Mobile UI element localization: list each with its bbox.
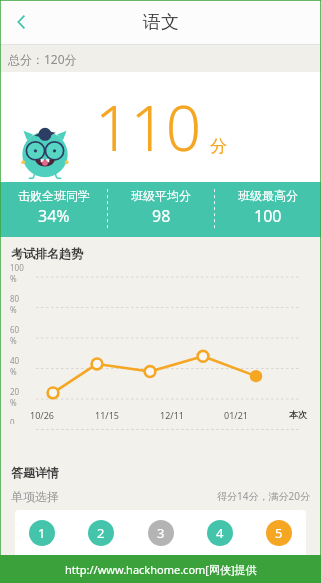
staticText: 11/15 <box>95 409 119 421</box>
staticText: 班级最高分 <box>238 188 298 203</box>
staticText: 击败全班同学 <box>18 188 90 203</box>
staticText: 0 <box>10 417 15 424</box>
staticText: 得分14分，满分20分 <box>217 489 310 503</box>
staticText: 本次 <box>289 409 307 420</box>
button[interactable]: 1 <box>15 510 306 566</box>
staticText: 2 <box>97 524 105 542</box>
button[interactable]: 击败全班同学 <box>0 182 107 227</box>
staticText: 100 <box>10 262 24 273</box>
staticText: 1 <box>38 524 46 542</box>
button[interactable]: 班级平均分 <box>108 182 214 227</box>
button[interactable]: 班级最高分 <box>215 182 321 227</box>
staticText: 40 <box>10 355 20 366</box>
staticText: 60 <box>10 324 20 335</box>
staticText: 3 <box>157 524 165 542</box>
staticText: % <box>10 335 17 346</box>
staticText: % <box>10 366 17 377</box>
staticText: 01/21 <box>224 409 248 421</box>
staticText: 单项选择 <box>11 489 59 504</box>
button[interactable]: Back <box>0 0 44 44</box>
staticText: % <box>10 273 17 284</box>
staticText: 110 <box>95 85 202 169</box>
button[interactable]: 1 <box>29 520 55 546</box>
staticText: 5 <box>275 524 283 542</box>
staticText: 总分：120分 <box>8 51 77 67</box>
staticText: 98 <box>152 205 171 227</box>
staticText: 班级平均分 <box>131 188 191 203</box>
staticText: 20 <box>10 386 20 397</box>
staticText: 考试排名趋势 <box>11 246 83 261</box>
button[interactable]: 3 <box>148 520 174 546</box>
staticText: 10/26 <box>30 409 54 421</box>
staticText: 答题详情 <box>11 465 59 480</box>
staticText: % <box>10 304 17 315</box>
button[interactable]: 4 <box>207 520 233 546</box>
staticText: 100 <box>254 205 282 227</box>
staticText: http://www.hackhome.com[网侠]提供 <box>65 562 257 577</box>
staticText: 80 <box>10 293 20 304</box>
staticText: 12/11 <box>160 409 184 421</box>
button[interactable]: 2 <box>88 520 114 546</box>
staticText: % <box>10 397 17 408</box>
staticText: 分 <box>210 136 227 157</box>
staticText: 4 <box>216 524 224 542</box>
staticText: 语文 <box>143 11 179 34</box>
button[interactable]: 5 <box>266 520 292 546</box>
staticText: 34% <box>38 205 70 227</box>
